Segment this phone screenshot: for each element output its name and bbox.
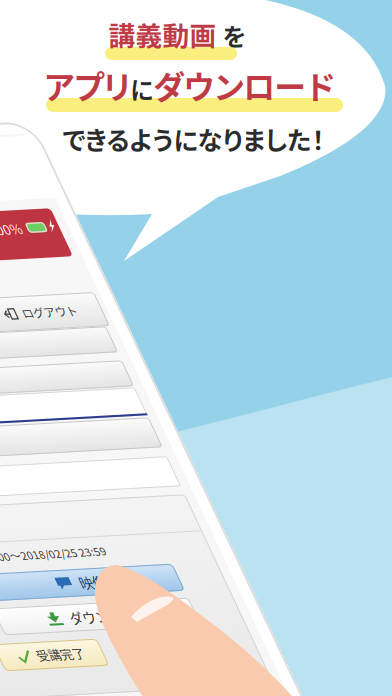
staticText: アプリ [44, 62, 130, 108]
staticText: できるようになりました！ [62, 120, 324, 157]
button[interactable]: ログアウト [0, 309, 14, 343]
staticText: 講義動画 [108, 15, 216, 53]
staticText: に [130, 71, 153, 106]
staticText: ダウンロード [153, 62, 334, 108]
staticText: を [222, 18, 245, 53]
